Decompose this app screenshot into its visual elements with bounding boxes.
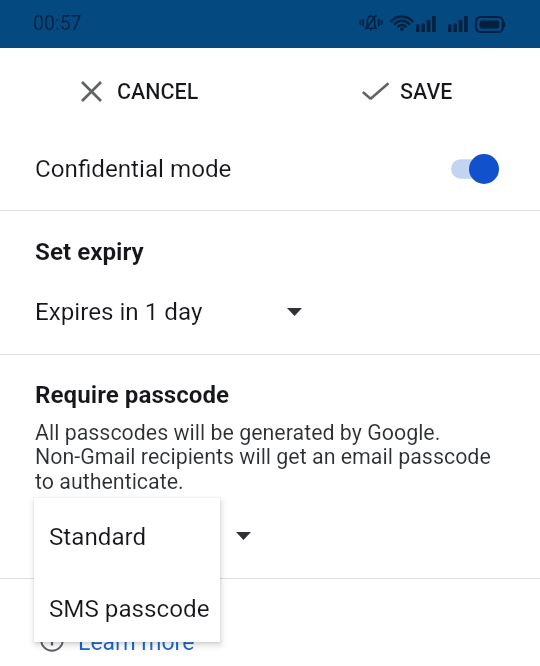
button[interactable]: Standard [34,498,220,570]
staticText: Require passcode [35,381,230,409]
button[interactable]: CANCEL [82,79,199,104]
button[interactable]: Learn more info [40,626,195,653]
button[interactable]: Confidential mode [0,48,540,210]
staticText: Standard [49,523,147,551]
staticText: Expires in 1 day [35,298,203,326]
staticText: Learn more [78,629,195,656]
staticText: Confidential mode [35,155,232,183]
button[interactable]: Standard [35,522,251,550]
button[interactable]: SMS passcode [34,570,220,642]
staticText: SMS passcode [49,595,210,623]
staticText: SAVE [400,79,453,104]
staticText: Standard [35,522,133,550]
button[interactable]: Expires in 1 day [35,298,302,326]
staticText: 00:57 [33,12,82,35]
other: Learn more info [40,628,64,652]
button[interactable]: SAVE [362,79,453,104]
staticText: Set expiry [35,238,144,266]
staticText: All passcodes will be generated by Googl… [35,420,491,495]
staticText: CANCEL [117,79,199,104]
